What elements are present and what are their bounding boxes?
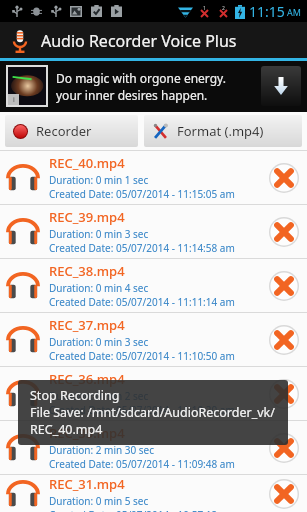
staticText: Created Date: 05/07/2014 - 10:57:12 am [49,508,235,512]
staticText: 11:15 [249,2,285,21]
staticText: Created Date: 05/07/2014 - 11:10:50 am [49,349,235,363]
button[interactable]: Delete recording [269,217,299,247]
button[interactable]: Delete recording [269,379,299,409]
staticText: Created Date: 05/07/2014 - 11:09:48 am [49,457,235,471]
staticText: Duration: 0 min 2 sec [49,389,149,403]
staticText: i [13,95,15,105]
staticText: your inner desires happen. [56,87,208,103]
button[interactable]: Delete recording [269,479,299,509]
staticText: 2 [222,5,225,12]
button[interactable]: Delete recording [269,271,299,301]
staticText: REC_31.mp4 [49,475,125,493]
button[interactable]: Delete recording [269,325,299,355]
staticText: Duration: 0 min 4 sec [49,281,149,295]
staticText: REC_40.mp4 [49,154,125,172]
staticText: Duration: 2 min 30 sec [49,443,155,457]
button[interactable]: REC_36.mp4 [0,367,307,421]
staticText: File Save: /mnt/sdcard/AudioRecorder_vk/ [30,404,275,421]
staticText: Duration: 0 min 1 sec [49,173,149,187]
button[interactable]: REC_39.mp4 [0,205,307,259]
button[interactable]: Format (.mp4) [144,115,302,147]
staticText: Duration: 0 min 3 sec [49,227,149,241]
staticText: REC_40.mp4 [30,421,103,438]
button[interactable]: Advertisement [0,60,307,112]
button[interactable]: REC_37.mp4 [0,313,307,367]
button[interactable]: Delete recording [269,433,299,463]
button[interactable]: REC_31.mp4 [0,475,307,512]
staticText: REC_35.mp4 [49,424,125,442]
button[interactable]: REC_35.mp4 [0,421,307,475]
button[interactable]: Recorder [5,115,138,147]
staticText: Created Date: 05/07/2014 - 11:11:14 am [49,295,235,309]
staticText: Duration: 0 min 5 sec [49,494,149,508]
staticText: Format (.mp4) [177,122,264,140]
button[interactable]: Delete recording [269,163,299,193]
button[interactable]: Download [261,66,301,106]
staticText: Created Date: 05/07/2014 - 11:14:58 am [49,241,235,255]
staticText: REC_39.mp4 [49,208,125,226]
staticText: Created Date: 05/07/2014 - 11:15:05 am [49,187,235,201]
staticText: Audio Recorder Voice Plus [41,30,237,52]
staticText: Stop Recording [30,387,120,404]
staticText: Duration: 0 min 3 sec [49,335,149,349]
staticText: Created Date: 05/07/2014 - 11:10:20 am [49,403,235,417]
button[interactable]: REC_40.mp4 [0,151,307,205]
staticText: AM [287,6,301,18]
staticText: REC_37.mp4 [49,316,125,334]
staticText: Do magic with orgone energy. Make [56,70,255,86]
button[interactable]: REC_38.mp4 [0,259,307,313]
staticText: REC_36.mp4 [49,370,125,388]
staticText: 1 [203,5,206,12]
staticText: REC_38.mp4 [49,262,125,280]
staticText: Recorder [36,122,92,140]
